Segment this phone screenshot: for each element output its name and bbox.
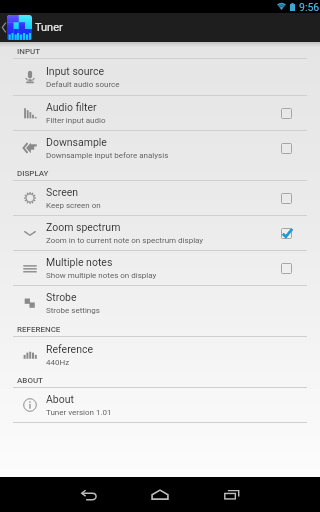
staticText: Multiple notes xyxy=(46,256,113,268)
button[interactable]: Zoom spectrum xyxy=(253,216,320,250)
staticText: Default audio source xyxy=(46,80,120,89)
staticText: 9:56 xyxy=(299,1,320,13)
button[interactable]: Back xyxy=(52,477,124,512)
button[interactable]: Multiple notes xyxy=(0,251,320,285)
button[interactable]: Audio filter xyxy=(0,96,320,130)
staticText: ABOUT xyxy=(17,376,43,385)
button[interactable]: Audio filter xyxy=(253,96,320,130)
button[interactable]: Reference xyxy=(0,337,320,372)
button[interactable]: Input source xyxy=(0,59,320,95)
staticText: Keep screen on xyxy=(46,201,101,210)
staticText: Screen xyxy=(46,186,79,198)
staticText: REFERENCE xyxy=(17,325,61,334)
staticText: Downsample xyxy=(46,136,107,148)
staticText: Strobe xyxy=(46,291,77,303)
staticText: 440Hz xyxy=(46,358,70,367)
staticText: Strobe settings xyxy=(46,306,100,315)
button[interactable]: Recent apps xyxy=(196,477,268,512)
staticText: DISPLAY xyxy=(17,169,49,178)
staticText: INPUT xyxy=(17,47,41,56)
button[interactable]: Home xyxy=(124,477,196,512)
staticText: Zoom spectrum xyxy=(46,221,121,233)
staticText: Show multiple notes on display xyxy=(46,271,157,280)
staticText: Input source xyxy=(46,65,105,77)
button[interactable]: Screen xyxy=(0,181,320,215)
button[interactable]: Strobe xyxy=(0,286,320,320)
staticText: Downsample input before analysis xyxy=(46,151,169,160)
button[interactable]: Zoom spectrum xyxy=(0,216,320,250)
staticText: Reference xyxy=(46,343,94,355)
button[interactable]: Screen xyxy=(253,181,320,215)
staticText: Tuner version 1.01 xyxy=(46,408,112,417)
button[interactable]: Downsample xyxy=(0,131,320,165)
staticText: Filter input audio xyxy=(46,116,106,125)
staticText: About xyxy=(46,393,74,405)
button[interactable]: About xyxy=(0,388,320,422)
button[interactable]: Multiple notes xyxy=(253,251,320,285)
staticText: Zoom in to current note on spectrum disp… xyxy=(46,236,204,245)
staticText: Tuner xyxy=(35,21,63,34)
button[interactable]: Downsample xyxy=(253,131,320,165)
staticText: Audio filter xyxy=(46,101,97,113)
